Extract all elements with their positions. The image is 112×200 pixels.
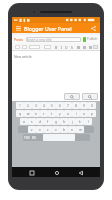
button[interactable]: 7 [64,102,72,109]
staticText: Insert a new title [26,38,52,42]
staticText: p [91,112,93,116]
staticText: r [43,112,45,116]
staticText: 0 [91,104,93,108]
button[interactable]: w [24,110,32,117]
staticText: l [88,120,89,124]
button[interactable]: Zoom out [64,93,80,100]
button[interactable]: Open navigation menu [15,25,22,32]
button[interactable]: l [84,118,92,125]
staticText: e [35,112,37,116]
button[interactable]: b [60,126,68,133]
button[interactable]: k [76,118,84,125]
staticText: New article [14,54,32,59]
button[interactable]: h [60,118,68,125]
button[interactable]: g [52,118,60,125]
button[interactable]: m [76,126,84,133]
button[interactable]: c [44,126,52,133]
staticText: v [55,128,57,132]
button[interactable]: x [36,126,44,133]
button[interactable]: f [44,118,52,125]
button[interactable]: 2 [24,102,32,109]
button[interactable]: e [32,110,40,117]
button[interactable]: 6 [56,102,64,109]
button[interactable]: Text style [15,45,20,49]
button[interactable]: t [48,110,56,117]
button[interactable]: More tools [93,45,98,49]
staticText: m [79,128,82,132]
button[interactable]: Share [89,24,97,32]
staticText: 8 [75,104,77,108]
button[interactable]: 3 [32,102,40,109]
button[interactable]: y [56,110,64,117]
button[interactable]: Format [88,45,92,49]
button[interactable]: 5 [48,102,56,109]
staticText: 5 [51,104,53,108]
button[interactable]: 9 [80,102,88,109]
button[interactable]: Font size [44,45,51,49]
button[interactable]: B [55,45,58,49]
button[interactable]: s [28,118,36,125]
staticText: 3 [35,104,37,108]
button[interactable]: Recent apps [27,168,36,177]
button[interactable]: d [36,118,44,125]
button[interactable]: Format [76,45,80,49]
button[interactable]: r [40,110,48,117]
button[interactable]: 0 [88,102,96,109]
button[interactable]: v [52,126,60,133]
button[interactable]: n [68,126,76,133]
button[interactable]: I [60,45,63,49]
staticText: q [19,112,21,116]
staticText: 9 [83,104,85,108]
button[interactable]: S [70,45,73,49]
staticText: 4 [43,104,45,108]
staticText: b [63,128,65,132]
staticText: h [63,120,65,124]
staticText: EN [32,136,36,140]
button[interactable]: o [80,110,88,117]
staticText: s [31,120,33,124]
button[interactable]: q [16,110,24,117]
staticText: Publish [87,37,98,41]
staticText: w [27,112,30,116]
staticText: 1 [19,104,21,108]
button[interactable]: p [88,110,96,117]
button[interactable]: z [28,126,36,133]
button[interactable]: Font family [29,45,40,49]
button[interactable]: Insert a new title [26,37,81,42]
button[interactable]: Home [52,168,61,177]
staticText: 2 [27,104,29,108]
staticText: a [23,120,25,124]
button[interactable]: j [68,118,76,125]
button[interactable]: 4 [40,102,48,109]
staticText: i [76,112,77,116]
staticText: n [71,128,73,132]
staticText: U [65,45,68,49]
staticText: f [47,120,49,124]
button[interactable]: Format [82,45,86,49]
staticText: I [61,45,63,49]
button[interactable]: 8 [72,102,80,109]
button[interactable]: u [64,110,72,117]
staticText: o [83,112,85,116]
staticText: c [47,128,49,132]
button[interactable]: Back [76,168,85,177]
staticText: k [79,120,81,124]
button[interactable]: Text style [22,45,27,49]
button[interactable]: a [20,118,28,125]
staticText: t [51,112,53,116]
staticText: S [71,45,73,49]
button[interactable]: 1 [16,102,24,109]
button[interactable]: i [72,110,80,117]
button[interactable]: U [65,45,68,49]
button[interactable]: Publish [83,37,86,42]
button[interactable]: New article [12,51,100,101]
button[interactable]: EN [31,134,37,141]
button[interactable]: ?123 [23,134,31,141]
button[interactable]: Zoom in [82,93,98,100]
